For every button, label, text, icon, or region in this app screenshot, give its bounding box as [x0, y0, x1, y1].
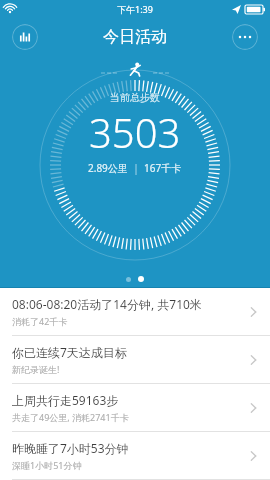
button[interactable]: 你已连续7天达成目标 — [0, 336, 270, 383]
staticText: 当前总步数 — [110, 91, 160, 104]
staticText: 上周共行走59163步 — [12, 392, 119, 408]
staticText: 3503 — [89, 105, 181, 159]
staticText: 今日活动 — [103, 27, 167, 47]
staticText: 08:06-08:20活动了14分钟, 共710米 — [12, 296, 202, 312]
staticText: | — [128, 161, 144, 175]
staticText: 深睡1小时51分钟 — [12, 459, 82, 471]
button[interactable]: 上周共行走59163步 — [0, 384, 270, 431]
staticText: 新纪录诞生! — [12, 363, 60, 375]
staticText: 共走了49公里, 消耗2741千卡 — [12, 411, 129, 423]
staticText: 167千卡 — [144, 161, 182, 175]
staticText: 2.89公里 — [88, 161, 128, 175]
button[interactable]: 统计 — [12, 24, 38, 50]
button[interactable]: 更多 — [232, 24, 258, 50]
button[interactable]: 08:06-08:20活动了14分钟, 共710米 — [0, 288, 270, 335]
staticText: 下午1:39 — [117, 3, 153, 15]
staticText: 消耗了42千卡 — [12, 315, 68, 327]
staticText: 你已连续7天达成目标 — [12, 344, 127, 360]
staticText: 昨晚睡了7小时53分钟 — [12, 440, 129, 456]
button[interactable]: 昨晚睡了7小时53分钟 — [0, 432, 270, 479]
